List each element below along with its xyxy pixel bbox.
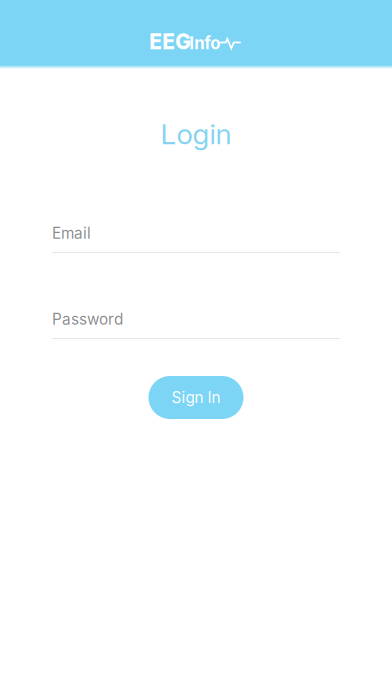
staticText: EEG xyxy=(149,29,191,54)
staticText: Login xyxy=(160,117,231,151)
button[interactable]: Email xyxy=(52,216,340,253)
button[interactable]: Sign In xyxy=(148,376,243,419)
staticText: Info xyxy=(189,33,220,53)
staticText: Sign In xyxy=(171,388,220,407)
staticText: Email xyxy=(52,224,91,243)
staticText: Password xyxy=(52,310,123,329)
button[interactable]: Password xyxy=(52,302,340,339)
